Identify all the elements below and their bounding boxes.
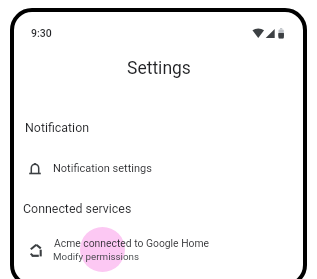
staticText: Settings — [127, 58, 191, 79]
staticText: Acme connected to Google Home — [54, 237, 209, 249]
staticText: Modify permissions — [53, 251, 140, 262]
staticText: Notification — [25, 120, 90, 135]
button[interactable]: Acme connected to Google Home — [14, 233, 303, 269]
staticText: 9:30 — [31, 27, 52, 39]
staticText: Connected services — [23, 201, 132, 216]
button[interactable]: Notification settings — [14, 151, 303, 183]
staticText: Notification settings — [53, 162, 152, 175]
